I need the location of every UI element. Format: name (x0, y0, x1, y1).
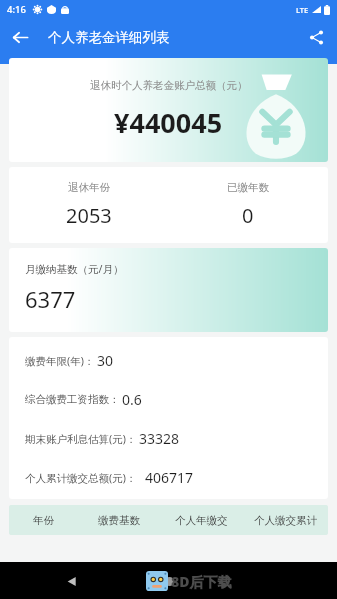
staticText: 406717 (145, 468, 194, 487)
staticText: 退休时个人养老金账户总额（元） (90, 79, 248, 92)
staticText: 退休年份 (68, 181, 110, 194)
button[interactable]: 年份 (9, 505, 78, 535)
staticText: ¥440045 (114, 104, 223, 141)
staticText: 个人缴交累计 (254, 514, 317, 527)
staticText: 0 (242, 202, 254, 229)
staticText: 个人养老金详细列表 (48, 29, 170, 46)
button[interactable]: Share (300, 21, 332, 53)
staticText: LTE (296, 5, 309, 15)
button[interactable]: Home (156, 568, 182, 594)
staticText: 6377 (25, 284, 76, 314)
staticText: 个人累计缴交总额(元)： (25, 471, 137, 485)
button[interactable]: Back (4, 21, 36, 53)
button[interactable]: 个人缴交累计 (242, 505, 328, 535)
staticText: 个人年缴交 (175, 514, 228, 527)
staticText: 4:16 (7, 3, 26, 16)
staticText: 30 (97, 351, 114, 370)
staticText: 期末账户利息估算(元)： (25, 432, 137, 446)
staticText: 缴费基数 (98, 514, 140, 527)
button[interactable]: 退休年份 (9, 167, 328, 243)
button[interactable]: 个人年缴交 (160, 505, 242, 535)
staticText: 2053 (66, 202, 112, 229)
button[interactable]: 退休时个人养老金账户总额（元） (9, 58, 328, 162)
staticText: 月缴纳基数（元/月） (25, 262, 124, 276)
button[interactable]: Back (58, 568, 84, 594)
staticText: 缴费年限(年)： (25, 354, 95, 368)
button[interactable]: 月缴纳基数（元/月） (9, 248, 328, 332)
staticText: 33328 (139, 429, 180, 448)
staticText: 年份 (33, 514, 54, 527)
button[interactable]: 缴费基数 (78, 505, 160, 535)
staticText: 综合缴费工资指数： (25, 393, 120, 406)
staticText: 已缴年数 (227, 181, 269, 194)
staticText: 8D后下载 (171, 572, 232, 591)
staticText: 0.6 (122, 390, 142, 409)
